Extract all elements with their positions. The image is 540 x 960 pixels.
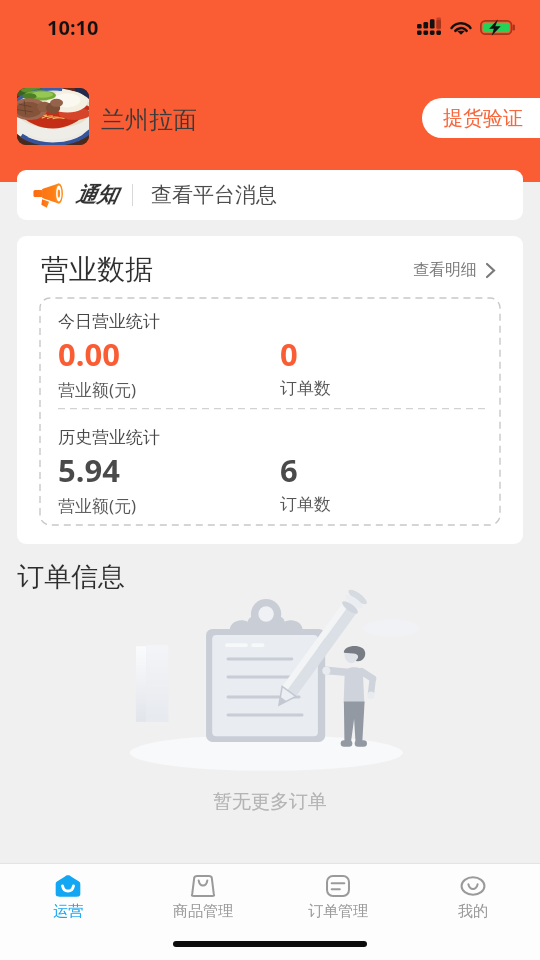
staticText: 订单管理 xyxy=(308,902,368,921)
staticText: 兰州拉面 xyxy=(101,105,197,135)
button[interactable]: 查看明细 xyxy=(401,254,501,286)
other: Store photo xyxy=(17,88,89,145)
staticText: 0 xyxy=(280,333,298,375)
staticText: 我的 xyxy=(458,902,488,921)
staticText: 订单信息 xyxy=(17,560,125,594)
staticText: 今日营业统计 xyxy=(58,311,160,332)
staticText: 0.00 xyxy=(58,333,120,375)
staticText: 历史营业统计 xyxy=(58,427,160,448)
staticText: 运营 xyxy=(53,902,83,921)
button[interactable]: 提货验证 xyxy=(422,98,540,138)
staticText: 查看明细 xyxy=(413,260,477,280)
staticText: 订单数 xyxy=(280,378,331,399)
staticText: 查看平台消息 xyxy=(151,182,277,208)
staticText: 营业额(元) xyxy=(58,494,137,517)
staticText: 暂无更多订单 xyxy=(213,790,327,814)
staticText: 营业额(元) xyxy=(58,378,137,401)
staticText: 提货验证 xyxy=(443,106,523,131)
staticText: 5.94 xyxy=(58,449,120,491)
staticText: 通知 xyxy=(75,182,117,208)
button[interactable]: 我的 xyxy=(405,864,540,935)
staticText: 商品管理 xyxy=(173,902,233,921)
button[interactable]: 运营 xyxy=(0,864,135,935)
button[interactable]: 通知 xyxy=(17,170,523,220)
staticText: 订单数 xyxy=(280,494,331,515)
staticText: 6 xyxy=(280,449,298,491)
button[interactable]: 订单管理 xyxy=(270,864,405,935)
staticText: 10:10 xyxy=(47,14,99,41)
staticText: 营业数据 xyxy=(41,252,153,287)
button[interactable]: 商品管理 xyxy=(135,864,270,935)
button[interactable]: Store photo xyxy=(17,88,205,145)
